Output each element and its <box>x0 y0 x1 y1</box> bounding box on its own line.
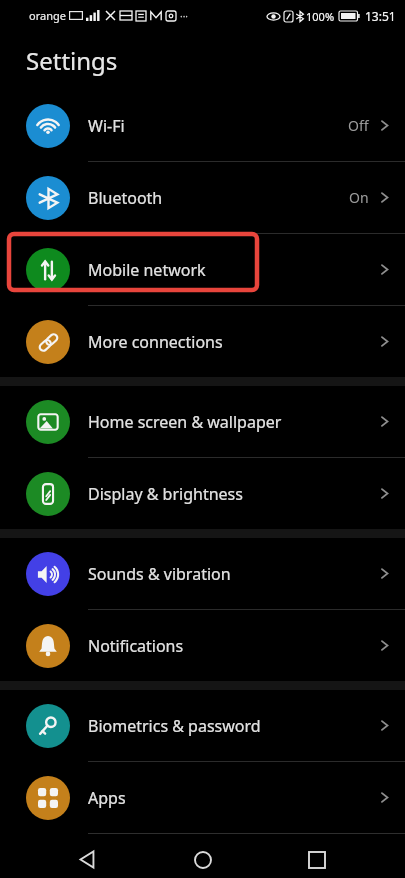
button[interactable]: Home <box>176 841 230 878</box>
staticText: 13:51 <box>365 8 396 24</box>
button[interactable]: Sounds & vibration <box>0 538 405 609</box>
staticText: Biometrics & password <box>88 715 377 737</box>
staticText: Settings <box>26 44 118 77</box>
staticText: Apps <box>88 787 377 809</box>
staticText: Display & brightness <box>88 483 377 505</box>
button[interactable]: Notifications <box>0 610 405 681</box>
staticText: Off <box>348 116 369 135</box>
staticText: Mobile network <box>88 259 377 281</box>
button[interactable]: Wi-Fi <box>0 90 405 161</box>
button[interactable]: Home screen & wallpaper <box>0 386 405 457</box>
button[interactable]: Display & brightness <box>0 458 405 529</box>
button[interactable]: Back <box>61 841 115 878</box>
staticText: On <box>349 188 369 207</box>
staticText: More connections <box>88 331 377 353</box>
button[interactable]: Recents <box>290 841 344 878</box>
staticText: Sounds & vibration <box>88 563 377 585</box>
staticText: Wi-Fi <box>88 115 348 137</box>
button[interactable]: Mobile network <box>0 234 405 305</box>
staticText: orange <box>29 8 66 23</box>
button[interactable]: Biometrics & password <box>0 690 405 761</box>
staticText: Bluetooth <box>88 187 349 209</box>
staticText: Notifications <box>88 635 377 657</box>
staticText: 100% <box>306 9 335 24</box>
button[interactable]: More connections <box>0 306 405 377</box>
button[interactable]: Apps <box>0 762 405 833</box>
staticText: Home screen & wallpaper <box>88 411 377 433</box>
button[interactable]: Bluetooth <box>0 162 405 233</box>
staticText: ··· <box>180 9 189 23</box>
